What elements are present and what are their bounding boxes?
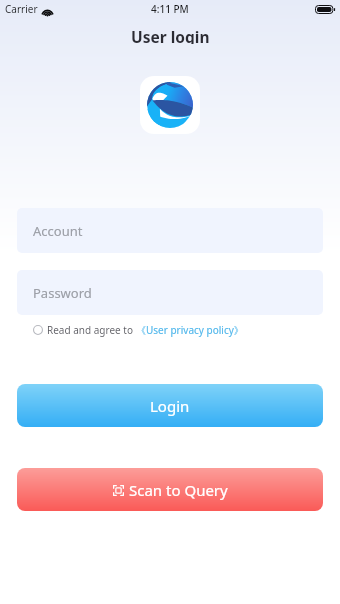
- staticText: Login: [150, 396, 190, 416]
- button[interactable]: Scan to Query: [17, 468, 323, 511]
- staticText: 4:11 PM: [151, 2, 189, 16]
- staticText: Scan to Query: [129, 480, 228, 500]
- button[interactable]: Login: [17, 384, 323, 427]
- staticText: Password: [33, 284, 92, 302]
- staticText: Account: [33, 222, 83, 240]
- button[interactable]: Password: [17, 270, 323, 315]
- staticText: Read and agree to: [47, 323, 136, 337]
- button[interactable]: Account: [17, 208, 323, 253]
- button[interactable]: Read and agree to: [33, 322, 244, 337]
- staticText: 《User privacy policy》: [136, 323, 244, 337]
- staticText: Carrier: [5, 2, 38, 16]
- staticText: User login: [131, 26, 210, 44]
